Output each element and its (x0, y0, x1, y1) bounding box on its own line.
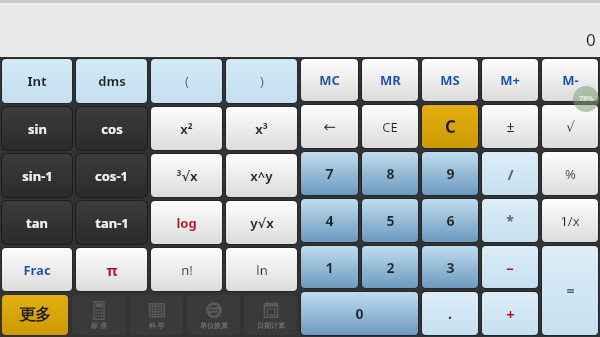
staticText: ) (260, 72, 264, 90)
button[interactable]: – (482, 246, 538, 288)
staticText: . (448, 304, 452, 323)
button[interactable]: % (542, 152, 598, 195)
button[interactable]: 7 (301, 152, 358, 195)
button[interactable]: 更多 (2, 295, 68, 335)
button[interactable]: C (422, 105, 478, 148)
staticText: 6 (446, 211, 455, 230)
staticText: CE (382, 118, 398, 136)
button[interactable]: 1/x (542, 199, 598, 242)
staticText: 9 (446, 164, 455, 183)
staticText: Int (27, 72, 47, 90)
staticText: MS (440, 71, 460, 89)
staticText: 1/x (560, 212, 580, 230)
staticText: M- (562, 71, 579, 89)
staticText: n! (181, 261, 193, 279)
staticText: 78% (579, 94, 594, 104)
staticText: – (506, 257, 514, 277)
button[interactable]: 4 (301, 199, 358, 242)
button[interactable]: ln (226, 248, 297, 291)
button[interactable]: 单位换算 (187, 295, 240, 335)
button[interactable]: M- (542, 59, 598, 101)
button[interactable]: 8 (362, 152, 418, 195)
button[interactable]: √ (542, 105, 598, 148)
button[interactable]: cos-1 (76, 154, 147, 197)
staticText: % (565, 165, 576, 183)
button[interactable]: ³√x (151, 154, 222, 197)
button[interactable]: Int (2, 59, 72, 103)
button[interactable]: MS (422, 59, 478, 101)
button[interactable]: ← (301, 105, 358, 148)
button[interactable]: 科 学 (130, 295, 183, 335)
staticText: π (106, 260, 118, 280)
button[interactable]: Frac (2, 248, 72, 291)
button[interactable]: ) (226, 59, 297, 103)
staticText: ( (185, 72, 189, 90)
button[interactable]: MC (301, 59, 358, 101)
button[interactable]: M+ (482, 59, 538, 101)
staticText: 1 (325, 258, 334, 277)
staticText: * (506, 211, 514, 230)
button[interactable]: dms (76, 59, 147, 103)
button[interactable]: x^y (226, 154, 297, 197)
button[interactable]: cos (76, 107, 147, 150)
button[interactable]: ( (151, 59, 222, 103)
staticText: = (566, 281, 575, 300)
button[interactable]: . (422, 292, 478, 335)
button[interactable]: 0 (301, 292, 418, 335)
button[interactable]: π (76, 248, 147, 291)
staticText: 2 (386, 258, 395, 277)
staticText: sin-1 (22, 167, 53, 185)
staticText: 8 (386, 164, 395, 183)
staticText: ± (506, 117, 515, 136)
button[interactable]: MR (362, 59, 418, 101)
staticText: / (507, 164, 514, 184)
button[interactable]: log (151, 201, 222, 244)
staticText: tan (26, 214, 48, 232)
staticText: sin (28, 120, 47, 138)
button[interactable]: 5 (362, 199, 418, 242)
button[interactable]: 标 准 (72, 295, 126, 335)
staticText: 3 (446, 258, 455, 277)
staticText: M+ (500, 71, 520, 89)
staticText: ³√x (176, 167, 198, 185)
staticText: 更多 (19, 305, 51, 325)
staticText: C (445, 115, 456, 138)
button[interactable]: sin-1 (2, 154, 72, 197)
staticText: 4 (325, 211, 334, 230)
staticText: y√x (250, 214, 274, 232)
button[interactable]: 2 (362, 246, 418, 288)
button[interactable]: tan (2, 201, 72, 244)
staticText: log (176, 214, 197, 232)
button[interactable]: 日期计算 (244, 295, 297, 335)
button[interactable]: / (482, 152, 538, 195)
button[interactable]: 3 (422, 246, 478, 288)
button[interactable]: 6 (422, 199, 478, 242)
button[interactable]: 9 (422, 152, 478, 195)
staticText: 日期计算 (257, 321, 285, 330)
staticText: 标 准 (91, 321, 107, 331)
staticText: + (506, 304, 515, 324)
button[interactable]: x³ (226, 107, 297, 150)
button[interactable]: x² (151, 107, 222, 150)
staticText: 5 (386, 211, 395, 230)
staticText: 科 学 (149, 321, 165, 331)
button[interactable]: n! (151, 248, 222, 291)
staticText: x^y (250, 167, 273, 185)
staticText: MR (380, 71, 401, 89)
button[interactable]: y√x (226, 201, 297, 244)
button[interactable]: * (482, 199, 538, 242)
staticText: 0 (586, 28, 596, 51)
button[interactable]: 1 (301, 246, 358, 288)
staticText: x³ (255, 120, 268, 138)
button[interactable]: ± (482, 105, 538, 148)
staticText: 7 (325, 164, 334, 183)
staticText: x² (180, 120, 193, 138)
button[interactable]: + (482, 292, 538, 335)
staticText: cos-1 (95, 167, 128, 185)
staticText: Frac (23, 261, 51, 279)
button[interactable]: = (542, 246, 598, 335)
button[interactable]: tan-1 (76, 201, 147, 244)
staticText: MC (319, 71, 340, 89)
button[interactable]: sin (2, 107, 72, 150)
button[interactable]: CE (362, 105, 418, 148)
